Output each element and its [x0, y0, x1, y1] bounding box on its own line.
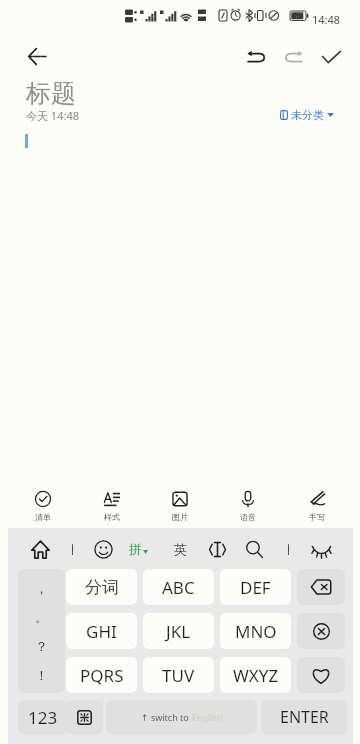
button[interactable]: Redo: [275, 38, 312, 75]
button[interactable]: MNO: [220, 613, 291, 649]
button[interactable]: WXYZ: [220, 657, 291, 693]
staticText: 英: [174, 541, 187, 557]
button[interactable]: GHI: [66, 613, 137, 649]
staticText: TUV: [162, 664, 195, 687]
staticText: 拼: [129, 541, 142, 557]
staticText: 未分类: [291, 108, 324, 122]
staticText: 图片: [172, 512, 188, 522]
button[interactable]: Keyboard layout: [203, 535, 231, 563]
button[interactable]: ENTER: [261, 700, 347, 734]
staticText: 今天 14:48: [26, 108, 79, 123]
button[interactable]: Emoji: [89, 535, 117, 563]
staticText: 标题: [26, 78, 76, 109]
button[interactable]: 分词: [66, 569, 137, 605]
button[interactable]: ↑ switch to: [106, 700, 257, 734]
staticText: JKL: [166, 620, 191, 643]
staticText: MNO: [235, 620, 277, 643]
button[interactable]: ABC: [143, 569, 214, 605]
staticText: ！: [35, 667, 48, 683]
button[interactable]: 手写: [289, 491, 345, 523]
button[interactable]: Undo: [237, 38, 274, 75]
button[interactable]: Favorite: [297, 657, 345, 693]
staticText: 。: [35, 609, 48, 625]
button[interactable]: Search: [240, 535, 268, 563]
staticText: 手写: [309, 512, 325, 522]
staticText: 14:48: [312, 12, 341, 27]
button[interactable]: Keyboard panel: [66, 700, 103, 734]
button[interactable]: Clear: [297, 613, 345, 649]
staticText: ？: [35, 638, 48, 654]
button[interactable]: 样式: [84, 491, 140, 523]
button[interactable]: 123: [18, 700, 67, 734]
staticText: ↑ switch to: [141, 711, 192, 723]
staticText: 分词: [85, 577, 119, 598]
staticText: WXYZ: [233, 664, 279, 687]
staticText: English: [192, 711, 223, 723]
button[interactable]: 图片: [152, 491, 208, 523]
button[interactable]: DEF: [220, 569, 291, 605]
button[interactable]: 清单: [15, 491, 71, 523]
button[interactable]: Backspace: [297, 569, 345, 605]
button[interactable]: Save: [313, 38, 350, 75]
button[interactable]: Hide keyboard: [307, 535, 335, 563]
button[interactable]: 未分类: [280, 108, 334, 122]
staticText: PQRS: [80, 664, 124, 687]
staticText: 语音: [240, 512, 256, 522]
button[interactable]: Punctuation: [18, 569, 65, 693]
button[interactable]: 英: [171, 538, 190, 560]
button[interactable]: 语音: [220, 491, 276, 523]
button[interactable]: TUV: [143, 657, 214, 693]
staticText: ABC: [162, 576, 195, 599]
button[interactable]: PQRS: [66, 657, 137, 693]
button[interactable]: 拼: [129, 538, 151, 560]
staticText: GHI: [86, 620, 117, 643]
staticText: 清单: [35, 512, 51, 522]
staticText: 123: [28, 706, 58, 729]
staticText: 样式: [104, 512, 120, 522]
staticText: ，: [35, 580, 48, 596]
staticText: DEF: [240, 576, 271, 599]
staticText: ENTER: [280, 706, 329, 728]
button[interactable]: Back: [18, 38, 55, 75]
button[interactable]: Home: [26, 535, 54, 563]
button[interactable]: JKL: [143, 613, 214, 649]
